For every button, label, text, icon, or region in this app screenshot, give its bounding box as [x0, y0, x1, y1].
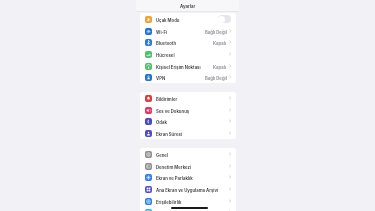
staticText: Ekran Süresi [156, 132, 182, 137]
button[interactable]: Kişisel Erişim Noktası [140, 60, 236, 72]
button[interactable]: Bildirimler [140, 92, 236, 104]
button[interactable]: Erişilebilirlik [140, 195, 236, 207]
staticText: Kapalı [213, 65, 227, 70]
staticText: Bildirimler [156, 97, 178, 102]
button[interactable]: Uçak Modu [140, 13, 236, 25]
button[interactable]: Duvar Kağıdı [140, 206, 236, 211]
button[interactable]: Ekran Süresi [140, 127, 236, 139]
button[interactable]: Odak [140, 115, 236, 127]
staticText: Hücresel [156, 53, 175, 58]
staticText: Bluetooth [156, 41, 177, 46]
staticText: Ana Ekran ve Uygulama Arşivi [156, 188, 219, 193]
button[interactable]: Ayarlar [136, 0, 239, 11]
button[interactable]: Denetim Merkezi [140, 160, 236, 172]
button[interactable]: Wi-Fi [140, 25, 236, 37]
button[interactable]: Ana Ekran ve Uygulama Arşivi [140, 183, 236, 195]
staticText: Kapalı [213, 41, 227, 46]
staticText: Ekran ve Parlaklık [156, 176, 193, 181]
staticText: Erişilebilirlik [156, 200, 182, 205]
other: Uçak Modu açık/kapalı [218, 15, 231, 23]
staticText: Ses ve Dokunuş [156, 109, 190, 114]
button[interactable]: VPN [140, 71, 236, 83]
staticText: Bağlı Değil [205, 30, 227, 35]
staticText: Denetim Merkezi [156, 165, 192, 170]
staticText: Wi-Fi [156, 30, 168, 35]
staticText: Kişisel Erişim Noktası [156, 65, 201, 70]
button[interactable]: Ekran ve Parlaklık [140, 171, 236, 183]
button[interactable]: Hücresel [140, 48, 236, 60]
staticText: Odak [156, 120, 167, 125]
staticText: Genel [156, 153, 169, 158]
staticText: Uçak Modu [156, 18, 180, 23]
button[interactable]: Genel [140, 148, 236, 160]
staticText: VPN [156, 76, 166, 81]
button[interactable]: Bluetooth [140, 36, 236, 48]
staticText: Ayarlar [180, 4, 196, 9]
staticText: Bağlı Değil [205, 76, 227, 81]
button[interactable]: Ses ve Dokunuş [140, 104, 236, 116]
